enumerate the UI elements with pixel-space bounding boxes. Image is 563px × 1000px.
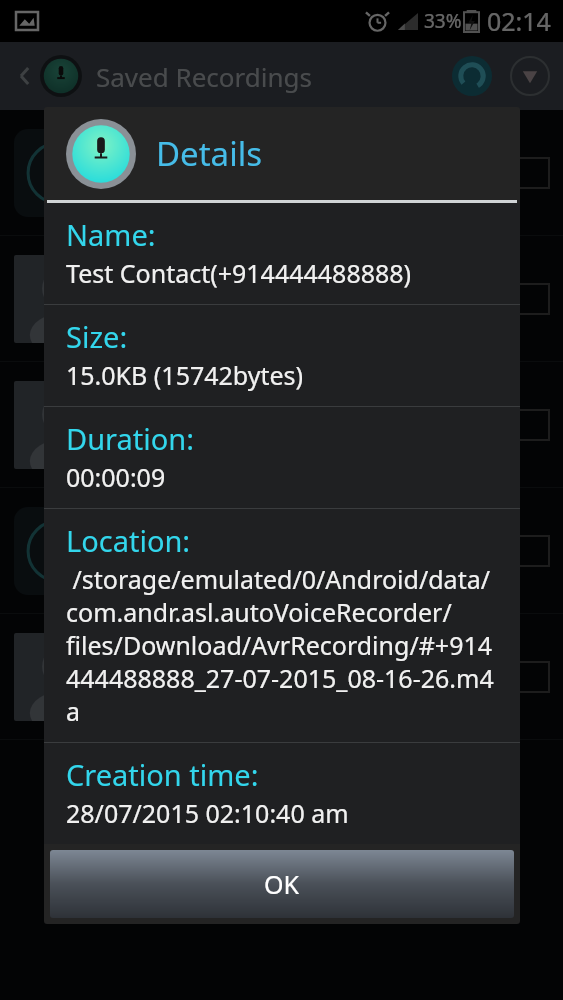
button[interactable] — [0, 614, 563, 740]
staticText: Creation time: — [66, 755, 259, 794]
staticText: /storage/emulated/0/Android/data/com.and… — [66, 562, 504, 728]
staticText: Test Contact(+914444488888) — [66, 256, 412, 290]
staticText: 02:14 — [487, 4, 551, 38]
staticText: 15.0KB (15742bytes) — [66, 358, 304, 392]
staticText: Name: — [66, 215, 156, 254]
staticText: Location: — [66, 521, 191, 560]
staticText: Duration: — [66, 419, 194, 458]
button[interactable]: More options — [507, 53, 553, 99]
button[interactable] — [0, 488, 563, 614]
button[interactable]: Back — [10, 61, 40, 91]
staticText: Details — [156, 131, 262, 176]
staticText: Size: — [66, 317, 128, 356]
button[interactable] — [0, 110, 563, 236]
staticText: 28/07/2015 02:10:40 am — [66, 796, 349, 830]
button[interactable]: OK — [50, 850, 514, 918]
staticText: 33% — [424, 8, 462, 34]
button[interactable]: Refresh — [449, 53, 495, 99]
staticText: Saved Recordings — [96, 59, 312, 94]
button[interactable] — [0, 362, 563, 488]
button[interactable] — [0, 236, 563, 362]
staticText: OK — [264, 867, 300, 901]
staticText: 00:00:09 — [66, 460, 166, 494]
